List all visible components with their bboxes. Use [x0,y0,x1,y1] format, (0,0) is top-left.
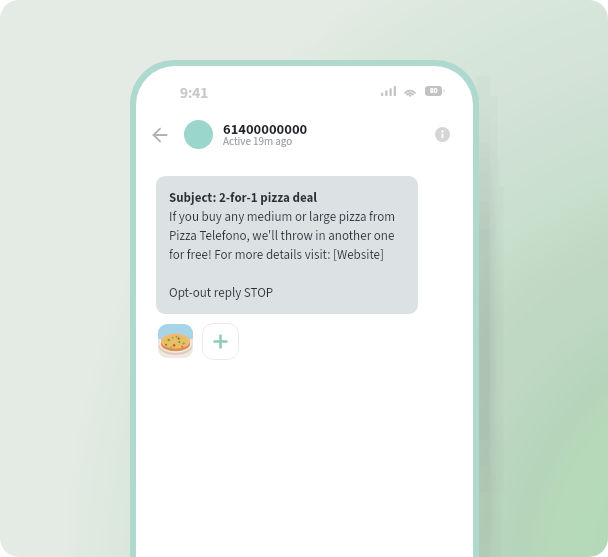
button[interactable]: Back [148,123,172,147]
button[interactable]: Contact avatar [184,120,213,149]
staticText: Active 19m ago [223,134,293,150]
staticText: 61400000000 [223,119,308,140]
staticText: Opt-out reply STOP [169,284,274,303]
staticText: Subject: 2-for-1 pizza deal [169,189,318,208]
button[interactable]: Conversation information [431,123,453,145]
staticText: 80 [430,86,438,96]
staticText: 9:41 [180,82,209,104]
button[interactable]: Pizza image [158,324,193,358]
button[interactable]: Subject: 2-for-1 pizza deal [156,176,418,314]
staticText: for free! For more details visit: [Websi… [169,246,385,265]
button[interactable]: Add attachment [202,323,239,360]
staticText: Pizza Telefono, we'll throw in another o… [169,227,395,246]
staticText: If you buy any medium or large pizza fro… [169,208,396,227]
